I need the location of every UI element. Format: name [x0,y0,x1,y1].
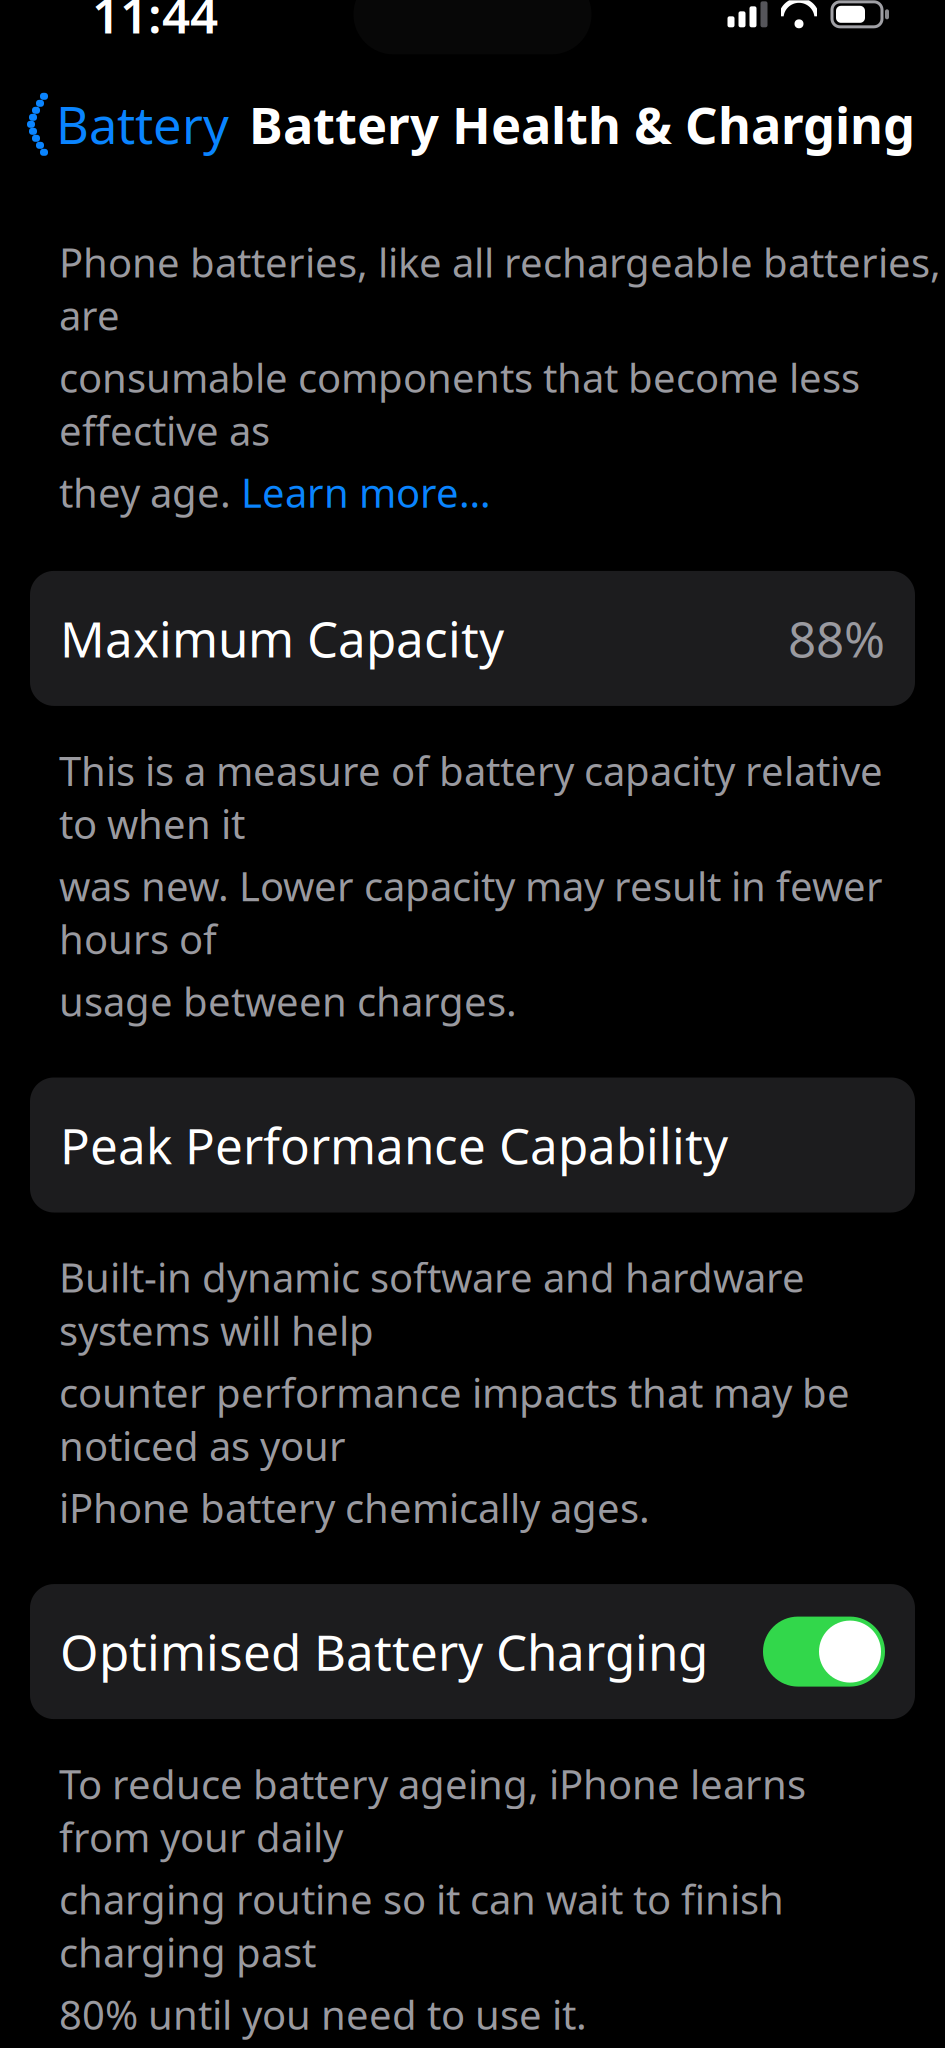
staticText: consumable components that become less e… [59,351,860,457]
staticText: To reduce battery ageing, iPhone learns … [59,1757,806,1863]
staticText: they age. [59,466,241,519]
staticText: iPhone battery chemically ages. [59,1481,650,1534]
staticText: Battery Health & Charging [249,91,915,158]
staticText: Optimised Battery Charging [60,1619,708,1684]
staticText: Built-in dynamic software and hardware s… [59,1250,805,1357]
staticText: Battery [56,91,229,158]
staticText: usage between charges. [59,974,517,1027]
staticText: This is a measure of battery capacity re… [59,744,883,850]
button[interactable]: Back to Battery [0,81,229,168]
staticText: 80% until you need to use it. [59,1988,587,2041]
staticText: 11:44 [92,0,218,47]
staticText: was new. Lower capacity may result in fe… [59,859,883,965]
button[interactable]: Maximum Capacity [0,571,915,706]
button[interactable]: Optimised Battery Charging [0,1584,915,1719]
staticText: 88% [788,606,885,671]
staticText: Phone batteries, like all rechargeable b… [59,235,941,341]
staticText: Peak Performance Capability [60,1112,728,1178]
staticText: Maximum Capacity [60,606,504,671]
button[interactable]: Peak Performance Capability [0,1077,915,1212]
staticText: charging routine so it can wait to finis… [59,1872,784,1978]
staticText: counter performance impacts that may be … [59,1366,850,1472]
staticText: Learn more… [241,466,491,519]
button[interactable]: Learn more… [241,466,491,519]
